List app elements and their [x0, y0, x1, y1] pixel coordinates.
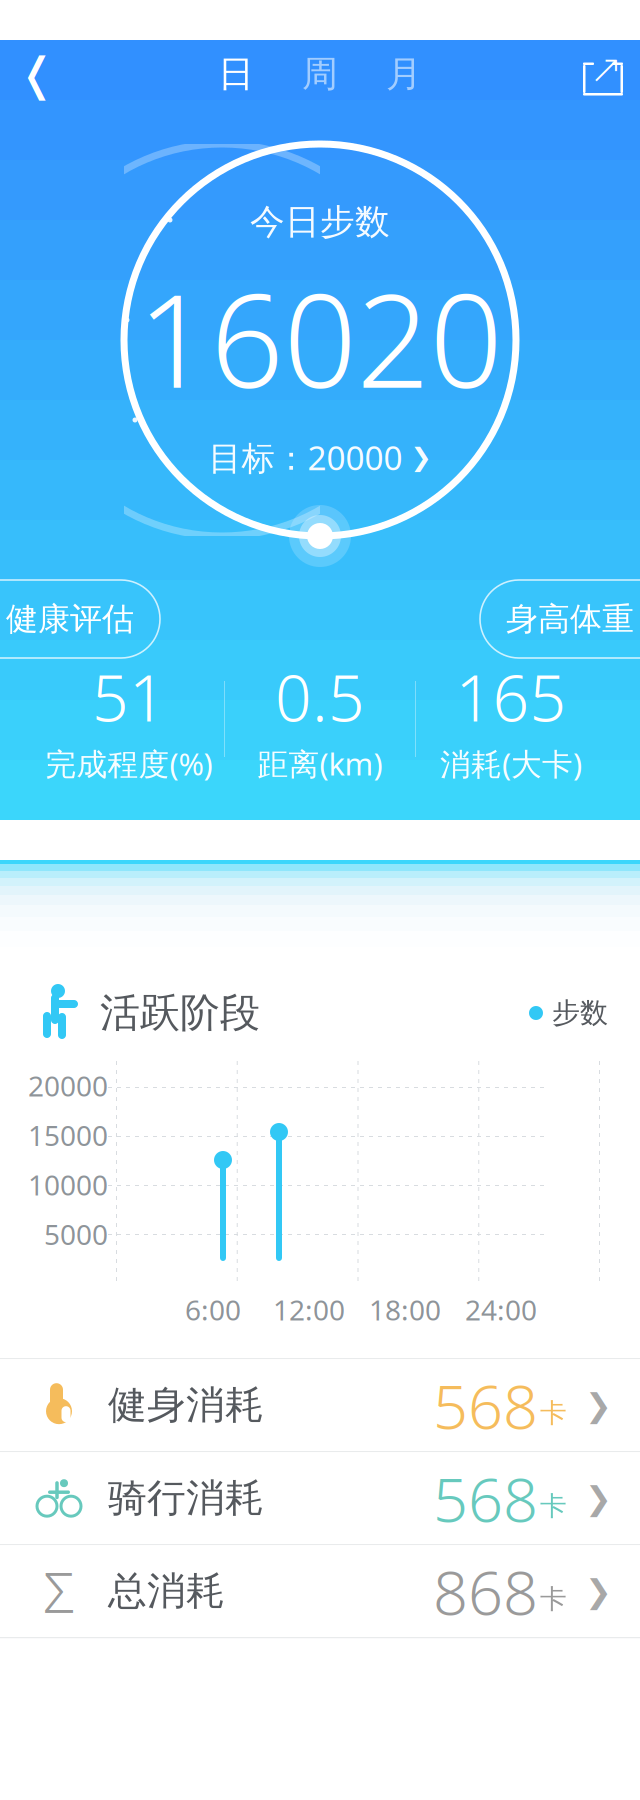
staticText: 健康评估: [6, 599, 134, 639]
button[interactable]: 目标：20000: [208, 423, 431, 479]
staticText: 10000: [28, 1166, 108, 1203]
staticText: 今日步数: [250, 201, 390, 243]
button[interactable]: 身高体重: [480, 580, 640, 658]
staticText: 868: [433, 1550, 538, 1632]
staticText: 活跃阶段: [100, 988, 260, 1037]
staticText: ❯: [410, 443, 431, 472]
button[interactable]: 骑行消耗: [0, 1452, 640, 1544]
staticText: 目标：20000: [208, 435, 402, 479]
staticText: 568: [433, 1364, 538, 1446]
staticText: 完成程度(%): [45, 743, 212, 784]
staticText: 步数: [552, 996, 608, 1030]
staticText: 周: [302, 52, 338, 96]
staticText: 身高体重: [506, 599, 634, 639]
button[interactable]: 健身消耗: [0, 1359, 640, 1451]
staticText: ❬: [18, 48, 56, 100]
button[interactable]: 日: [194, 44, 278, 104]
staticText: 5000: [44, 1216, 108, 1253]
staticText: 51: [92, 654, 166, 739]
button[interactable]: Back: [0, 44, 74, 104]
staticText: 消耗(大卡): [440, 743, 582, 784]
staticText: 165: [455, 654, 566, 739]
staticText: Σ: [43, 1554, 75, 1628]
staticText: 15000: [28, 1117, 108, 1154]
button[interactable]: Share: [566, 44, 640, 104]
staticText: 24:00: [465, 1291, 537, 1328]
staticText: 12:00: [273, 1291, 345, 1328]
staticText: 卡: [540, 1583, 567, 1616]
staticText: 10:21 AM: [294, 3, 418, 41]
button[interactable]: 周: [278, 44, 362, 104]
staticText: ↗: [589, 46, 623, 92]
staticText: 568: [433, 1457, 538, 1539]
staticText: 健身消耗: [108, 1381, 264, 1429]
staticText: ❯: [585, 1573, 612, 1609]
staticText: 距离(km): [257, 743, 382, 784]
staticText: 20000: [28, 1067, 108, 1104]
button[interactable]: Σ: [0, 1545, 640, 1637]
staticText: ❯: [585, 1387, 612, 1423]
staticText: 总消耗: [108, 1567, 225, 1615]
staticText: BELL: [116, 3, 194, 41]
staticText: 日: [218, 52, 254, 96]
staticText: 骑行消耗: [108, 1474, 264, 1522]
button[interactable]: 健康评估: [0, 580, 160, 658]
staticText: 卡: [540, 1397, 567, 1430]
staticText: 0.5: [275, 654, 365, 739]
staticText: 18:00: [369, 1291, 441, 1328]
staticText: 16020: [137, 253, 502, 423]
button[interactable]: 月: [362, 44, 446, 104]
staticText: 6:00: [185, 1291, 241, 1328]
staticText: ❯: [585, 1480, 612, 1516]
staticText: 卡: [540, 1490, 567, 1523]
staticText: 月: [386, 52, 422, 96]
